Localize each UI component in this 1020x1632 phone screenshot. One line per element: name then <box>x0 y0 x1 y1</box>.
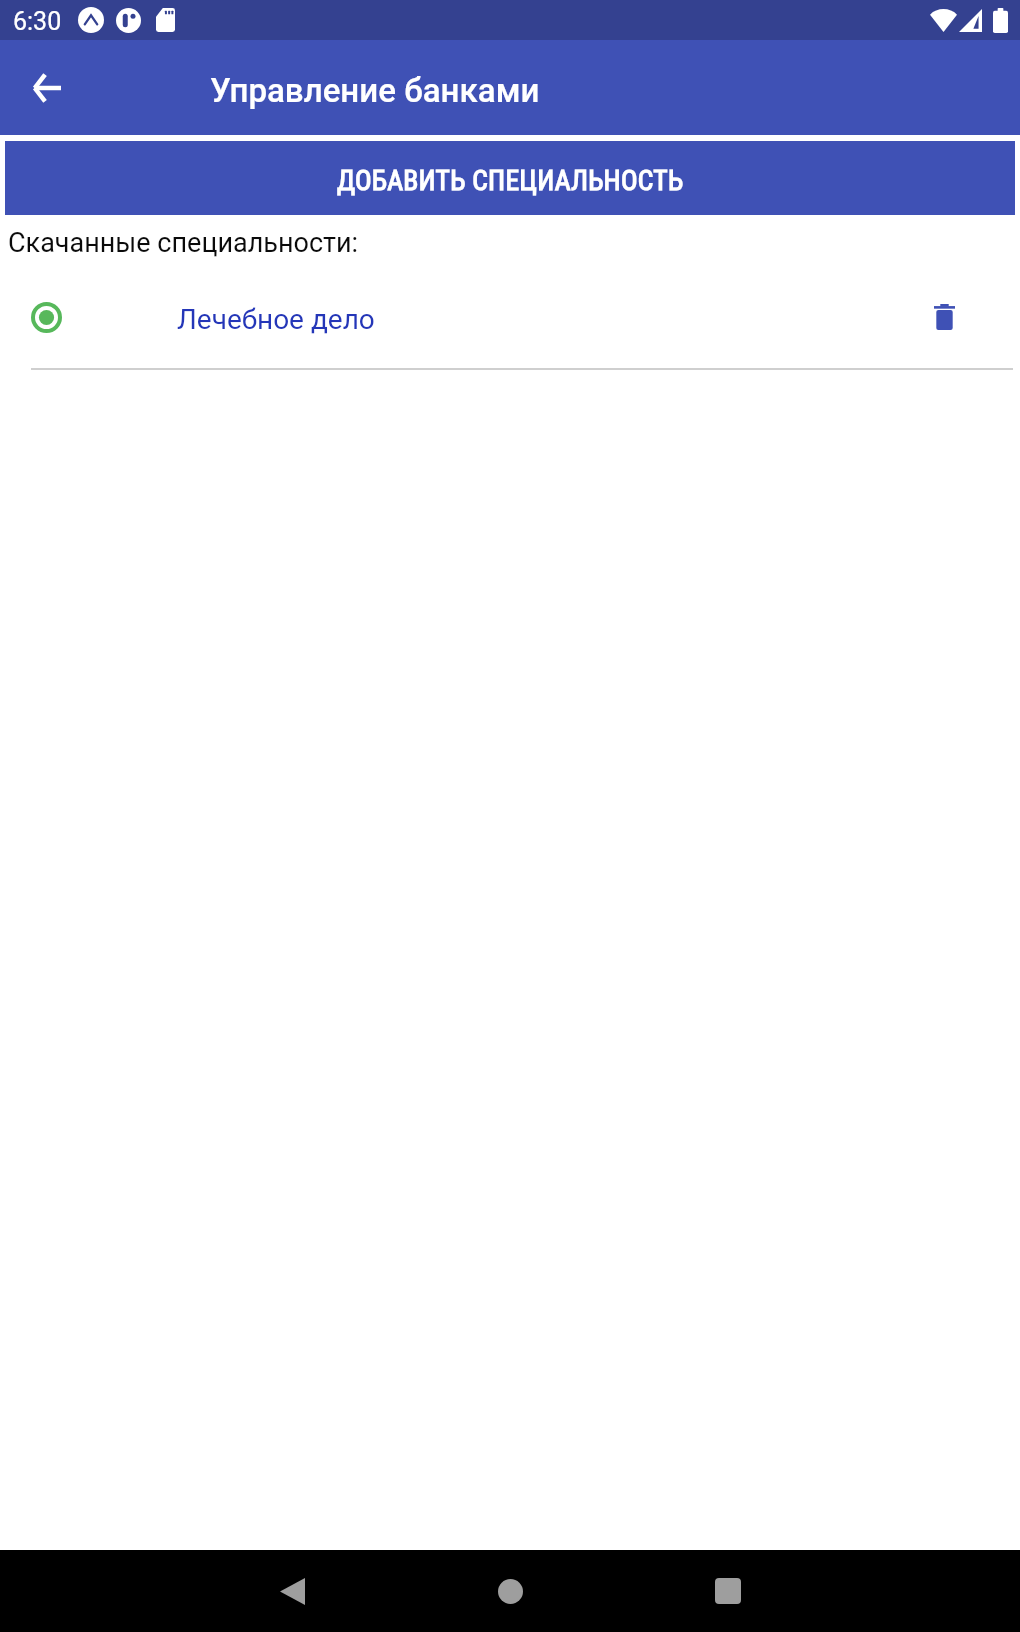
button[interactable]: ДОБАВИТЬ СПЕЦИАЛЬНОСТЬ <box>5 141 1015 215</box>
staticText: Управление банками <box>210 71 540 110</box>
staticText: 6:30 <box>13 7 62 36</box>
button[interactable]: Home <box>401 1550 619 1632</box>
button[interactable]: Back <box>183 1550 401 1632</box>
button[interactable]: Back <box>17 59 75 117</box>
button[interactable]: Delete <box>911 284 977 350</box>
staticText: ДОБАВИТЬ СПЕЦИАЛЬНОСТЬ <box>337 164 684 196</box>
button[interactable]: Recents <box>619 1550 837 1632</box>
button[interactable]: Лечебное дело <box>0 284 1020 350</box>
staticText: Скачанные специальности: <box>8 227 359 259</box>
staticText: Лечебное дело <box>177 303 375 336</box>
